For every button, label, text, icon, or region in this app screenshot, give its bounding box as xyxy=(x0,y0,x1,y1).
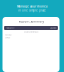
staticText: Manage your money xyxy=(17,5,47,8)
staticText: Account Summary xyxy=(18,20,43,23)
staticText: Checking xyxy=(4,34,11,36)
staticText: updated a moment ago xyxy=(23,31,38,33)
staticText: Savings xyxy=(4,37,10,39)
staticText: $4,820.55 xyxy=(49,27,56,29)
staticText: in one simple place xyxy=(18,9,46,12)
staticText: Total balance xyxy=(5,27,14,29)
